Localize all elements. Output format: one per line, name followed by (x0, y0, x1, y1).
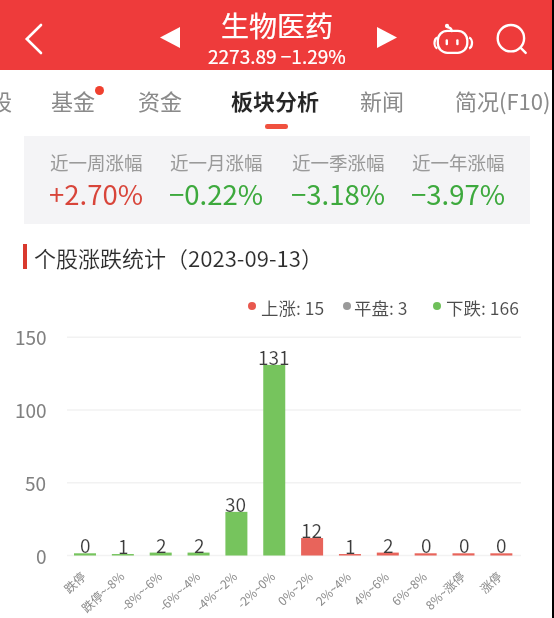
button[interactable]: 近一月涨幅 (158, 140, 274, 220)
staticText: −0.22% (169, 173, 264, 213)
staticText: -4%~-2% (192, 567, 241, 614)
button[interactable]: 资金 (130, 78, 175, 118)
button[interactable]: 简况(F10) (447, 78, 543, 118)
staticText: 0 (36, 542, 47, 570)
staticText: -2%~0% (233, 567, 279, 611)
button[interactable]: 近一年涨幅 (400, 140, 516, 220)
staticText: 个股涨跌统计（2023-09-13） (34, 241, 323, 273)
button[interactable]: Next sector (367, 17, 407, 57)
button[interactable]: Search (490, 14, 534, 56)
staticText: 2 (194, 531, 205, 559)
staticText: 0 (80, 531, 91, 559)
staticText: 近一周涨幅 (50, 149, 143, 176)
staticText: 新闻 (360, 84, 405, 116)
staticText: 基金 (51, 84, 96, 116)
staticText: 50 (25, 469, 47, 497)
button[interactable]: 板块分析 (223, 78, 312, 118)
staticText: 4%~6% (350, 567, 393, 609)
staticText: 100 (15, 396, 47, 424)
button[interactable]: 基金 (43, 78, 88, 118)
staticText: 近一季涨幅 (292, 149, 385, 176)
staticText: 近一月涨幅 (170, 149, 263, 176)
staticText: 2273.89 −1.29% (208, 42, 346, 70)
button[interactable]: Back (8, 13, 60, 57)
staticText: +2.70% (49, 173, 144, 213)
button[interactable]: 新闻 (352, 78, 397, 118)
staticText: 跌停 (60, 567, 90, 596)
staticText: 6%~8% (388, 567, 431, 609)
staticText: 涨停 (476, 567, 506, 596)
button[interactable]: 下跌: 166 (430, 295, 519, 317)
staticText: 12 (301, 516, 323, 544)
staticText: −3.97% (411, 173, 506, 213)
staticText: 上涨: 15 (261, 295, 325, 317)
staticText: 2 (383, 531, 394, 559)
staticText: 0 (496, 531, 507, 559)
staticText: 资金 (138, 84, 183, 116)
staticText: 2%~4% (312, 567, 355, 609)
staticText: 近一年涨幅 (412, 149, 505, 176)
staticText: 0 (459, 531, 470, 559)
staticText: 生物医药 (221, 5, 334, 46)
button[interactable]: 近一季涨幅 (280, 140, 396, 220)
staticText: 30 (225, 490, 247, 518)
staticText: 0%~2% (274, 567, 317, 609)
staticText: 1 (345, 532, 356, 560)
staticText: 下跌: 166 (446, 295, 519, 317)
staticText: 131 (258, 343, 290, 371)
button[interactable]: Previous sector (150, 17, 190, 57)
staticText: 简况(F10) (455, 84, 551, 116)
button[interactable]: AI assistant (428, 12, 476, 58)
staticText: -8%~-6% (117, 567, 166, 614)
staticText: 平盘: 3 (354, 295, 408, 317)
staticText: −3.18% (291, 173, 386, 213)
staticText: 2 (156, 531, 167, 559)
staticText: -6%~-4% (155, 567, 204, 614)
staticText: 股 (0, 84, 13, 116)
staticText: 板块分析 (231, 84, 320, 116)
staticText: 150 (15, 323, 47, 351)
staticText: 8%~涨停 (421, 567, 469, 613)
button[interactable]: 平盘: 3 (340, 295, 408, 317)
button[interactable]: 股 (0, 78, 5, 118)
staticText: 跌停~-8% (77, 567, 128, 616)
button[interactable]: 上涨: 15 (245, 295, 325, 317)
button[interactable]: 近一周涨幅 (38, 140, 154, 220)
staticText: 1 (118, 532, 129, 560)
staticText: 0 (421, 531, 432, 559)
